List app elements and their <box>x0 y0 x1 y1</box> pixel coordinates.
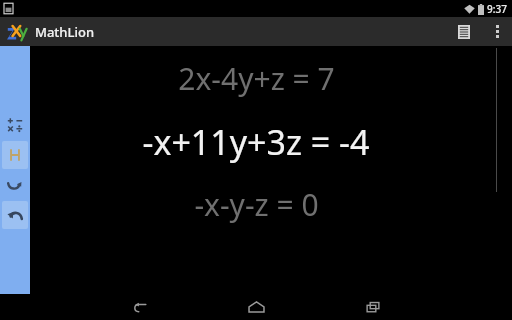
staticText: MathLion <box>35 23 95 41</box>
staticText: 9:37 <box>487 2 507 16</box>
button[interactable]: Equation list <box>446 17 482 46</box>
staticText: -x-y-z = 0 <box>194 184 319 225</box>
button[interactable]: -x-y-z = 0 <box>0 176 512 233</box>
button[interactable]: Hypothesis <box>2 141 28 169</box>
button[interactable]: Redo <box>2 171 28 199</box>
staticText: 2x-4y+z = 7 <box>178 58 335 99</box>
button[interactable]: Recents <box>354 294 392 320</box>
button[interactable]: -x+11y+3z = -4 <box>0 113 512 170</box>
button[interactable]: Home <box>237 294 275 320</box>
button[interactable]: Back <box>120 294 158 320</box>
staticText: -x+11y+3z = -4 <box>142 119 370 165</box>
button[interactable]: Operations <box>2 111 28 139</box>
button[interactable]: More options <box>482 17 512 46</box>
button[interactable]: Undo <box>2 201 28 229</box>
button[interactable]: 2x-4y+z = 7 <box>0 50 512 107</box>
